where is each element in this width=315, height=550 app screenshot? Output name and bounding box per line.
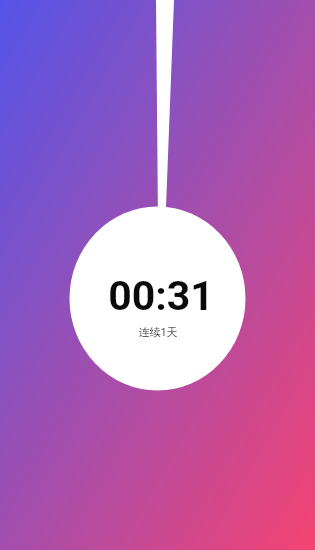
staticText: 连续1天 [138, 325, 178, 339]
button[interactable]: Timer 00:31 [70, 184, 246, 368]
staticText: 00:31 [108, 272, 214, 320]
button[interactable]: Timer 00:31 [0, 0, 315, 550]
